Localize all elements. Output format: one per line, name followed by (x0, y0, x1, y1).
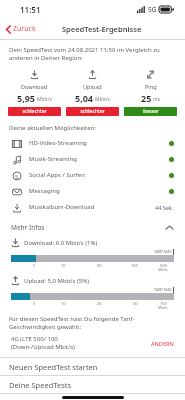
staticText: 44 Sek. (155, 204, 174, 211)
button[interactable]: besser (124, 107, 177, 116)
staticText: Neuen SpeedTest starten (9, 362, 98, 372)
staticText: SpeedTest-Ergebnisse (62, 24, 142, 34)
staticText: schlechter (22, 108, 47, 115)
staticText: 25 (141, 92, 152, 104)
staticText: Für diesen SpeedTest hast Du folgende Ta… (9, 315, 176, 331)
staticText: ÄNDERN (151, 340, 174, 347)
button[interactable]: Messaging (0, 183, 185, 199)
staticText: Mehr Infos (11, 223, 165, 232)
staticText: Mbit/s (37, 96, 52, 103)
staticText: Download: 6.0 Mbit/s (1%) (24, 239, 98, 247)
button[interactable]: schlechter (66, 107, 119, 116)
staticText: 50 (97, 263, 102, 268)
staticText: 5,95 (17, 92, 36, 104)
staticText: 4G|LTE 500/ 100 (11, 335, 58, 343)
staticText: 5 (33, 301, 36, 306)
other: Einklappen (165, 225, 174, 230)
staticText: 2 (33, 263, 36, 268)
staticText: (Down-/Upload Mbit/s) (11, 343, 75, 351)
staticText: Musik-Streaming (29, 155, 169, 163)
button[interactable]: Zurück (0, 21, 42, 37)
staticText: TARIF MAX (154, 249, 172, 254)
staticText: HD-Video-Streaming (29, 139, 169, 147)
button[interactable]: 4G|LTE 500/ 100 (0, 335, 185, 351)
staticText: Upload (83, 83, 102, 90)
button[interactable]: Social Apps / Surfen (0, 167, 185, 183)
staticText: 100 (160, 301, 167, 306)
staticText: TARIF MAX (154, 287, 172, 292)
staticText: ms (153, 96, 161, 103)
staticText: Ping (145, 83, 157, 90)
staticText: 25 (97, 301, 102, 306)
staticText: 10 (61, 263, 66, 268)
staticText: 10 (61, 301, 66, 306)
staticText: Mbit/s (158, 306, 168, 310)
staticText: Dein SpeedTest vom 24.08.2021 11:50 im V… (9, 46, 176, 62)
staticText: 500 (160, 263, 167, 268)
button[interactable]: Mehr Infos (0, 221, 185, 234)
staticText: 11:51 (20, 4, 41, 15)
staticText: Musikalbum-Download (29, 203, 155, 211)
button[interactable]: schlechter (8, 107, 61, 116)
button[interactable]: Neuen SpeedTest starten (0, 358, 185, 375)
staticText: schlechter (80, 108, 105, 115)
button[interactable]: Musikalbum-Download (0, 199, 185, 215)
staticText: 150 (131, 263, 138, 268)
staticText: Upload: 5,0 Mbit/s (5%) (24, 277, 90, 285)
button[interactable]: Deine SpeedTests (0, 376, 185, 393)
staticText: Social Apps / Surfen (29, 171, 169, 179)
button[interactable]: Musik-Streaming (0, 151, 185, 167)
staticText: Mbit/s (95, 96, 110, 103)
staticText: Zurück (13, 24, 36, 34)
staticText: besser (143, 108, 159, 115)
staticText: 5G (148, 5, 157, 14)
staticText: Download (21, 83, 48, 90)
staticText: Deine aktuellen Möglichkeiten: (9, 124, 96, 132)
button[interactable]: HD-Video-Streaming (0, 135, 185, 151)
staticText: 5,04 (75, 92, 94, 104)
staticText: Deine SpeedTests (9, 380, 72, 390)
staticText: 50 (133, 301, 138, 306)
staticText: Messaging (29, 187, 169, 195)
staticText: Mbit/s (158, 268, 168, 272)
